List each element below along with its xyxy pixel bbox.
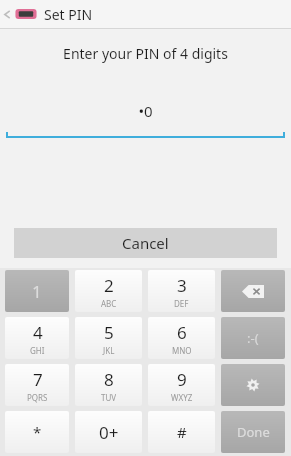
staticText: 6 <box>177 321 187 344</box>
button[interactable]: key 5 <box>75 317 142 359</box>
staticText: MNO <box>172 345 192 356</box>
staticText: 5 <box>104 321 114 344</box>
staticText: 3 <box>177 274 187 297</box>
staticText: 7 <box>33 368 43 391</box>
staticText: JKL <box>103 345 115 356</box>
staticText: GHI <box>30 345 45 356</box>
button[interactable]: Back <box>0 0 14 28</box>
staticText: 0+ <box>99 421 119 444</box>
staticText: 8 <box>104 368 114 391</box>
staticText: PQRS <box>27 392 48 403</box>
button[interactable]: key # <box>148 411 215 453</box>
staticText: Enter your PIN of 4 digits <box>0 44 291 63</box>
button[interactable]: gear <box>221 364 285 406</box>
staticText: Set PIN <box>44 5 93 24</box>
staticText: ABC <box>101 298 117 309</box>
button[interactable]: key 0+ <box>75 411 142 453</box>
button[interactable]: Cancel <box>14 228 277 258</box>
staticText: 9 <box>177 368 187 391</box>
staticText: * <box>33 422 42 442</box>
staticText: Cancel <box>122 233 169 253</box>
button[interactable]: key * <box>5 411 69 453</box>
staticText: WXYZ <box>171 392 193 403</box>
button[interactable]: key Done <box>221 411 285 453</box>
button[interactable]: key 9 <box>148 364 215 406</box>
staticText: TUV <box>101 392 117 403</box>
button[interactable]: key 4 <box>5 317 69 359</box>
button[interactable]: key 3 <box>148 270 215 312</box>
staticText: DEF <box>174 298 189 309</box>
button[interactable]: emoji <box>221 317 285 359</box>
staticText: Done <box>237 423 270 441</box>
staticText: :-( <box>247 329 259 347</box>
staticText: 1 <box>32 280 42 303</box>
staticText: 2 <box>104 274 114 297</box>
staticText: # <box>177 422 187 442</box>
staticText: •0 <box>0 101 291 121</box>
button[interactable]: key 6 <box>148 317 215 359</box>
button[interactable]: key 7 <box>5 364 69 406</box>
button[interactable]: key 1 <box>5 270 69 312</box>
button[interactable]: backspace <box>221 270 285 312</box>
staticText: 4 <box>33 321 43 344</box>
button[interactable]: key 8 <box>75 364 142 406</box>
button[interactable]: key 2 <box>75 270 142 312</box>
